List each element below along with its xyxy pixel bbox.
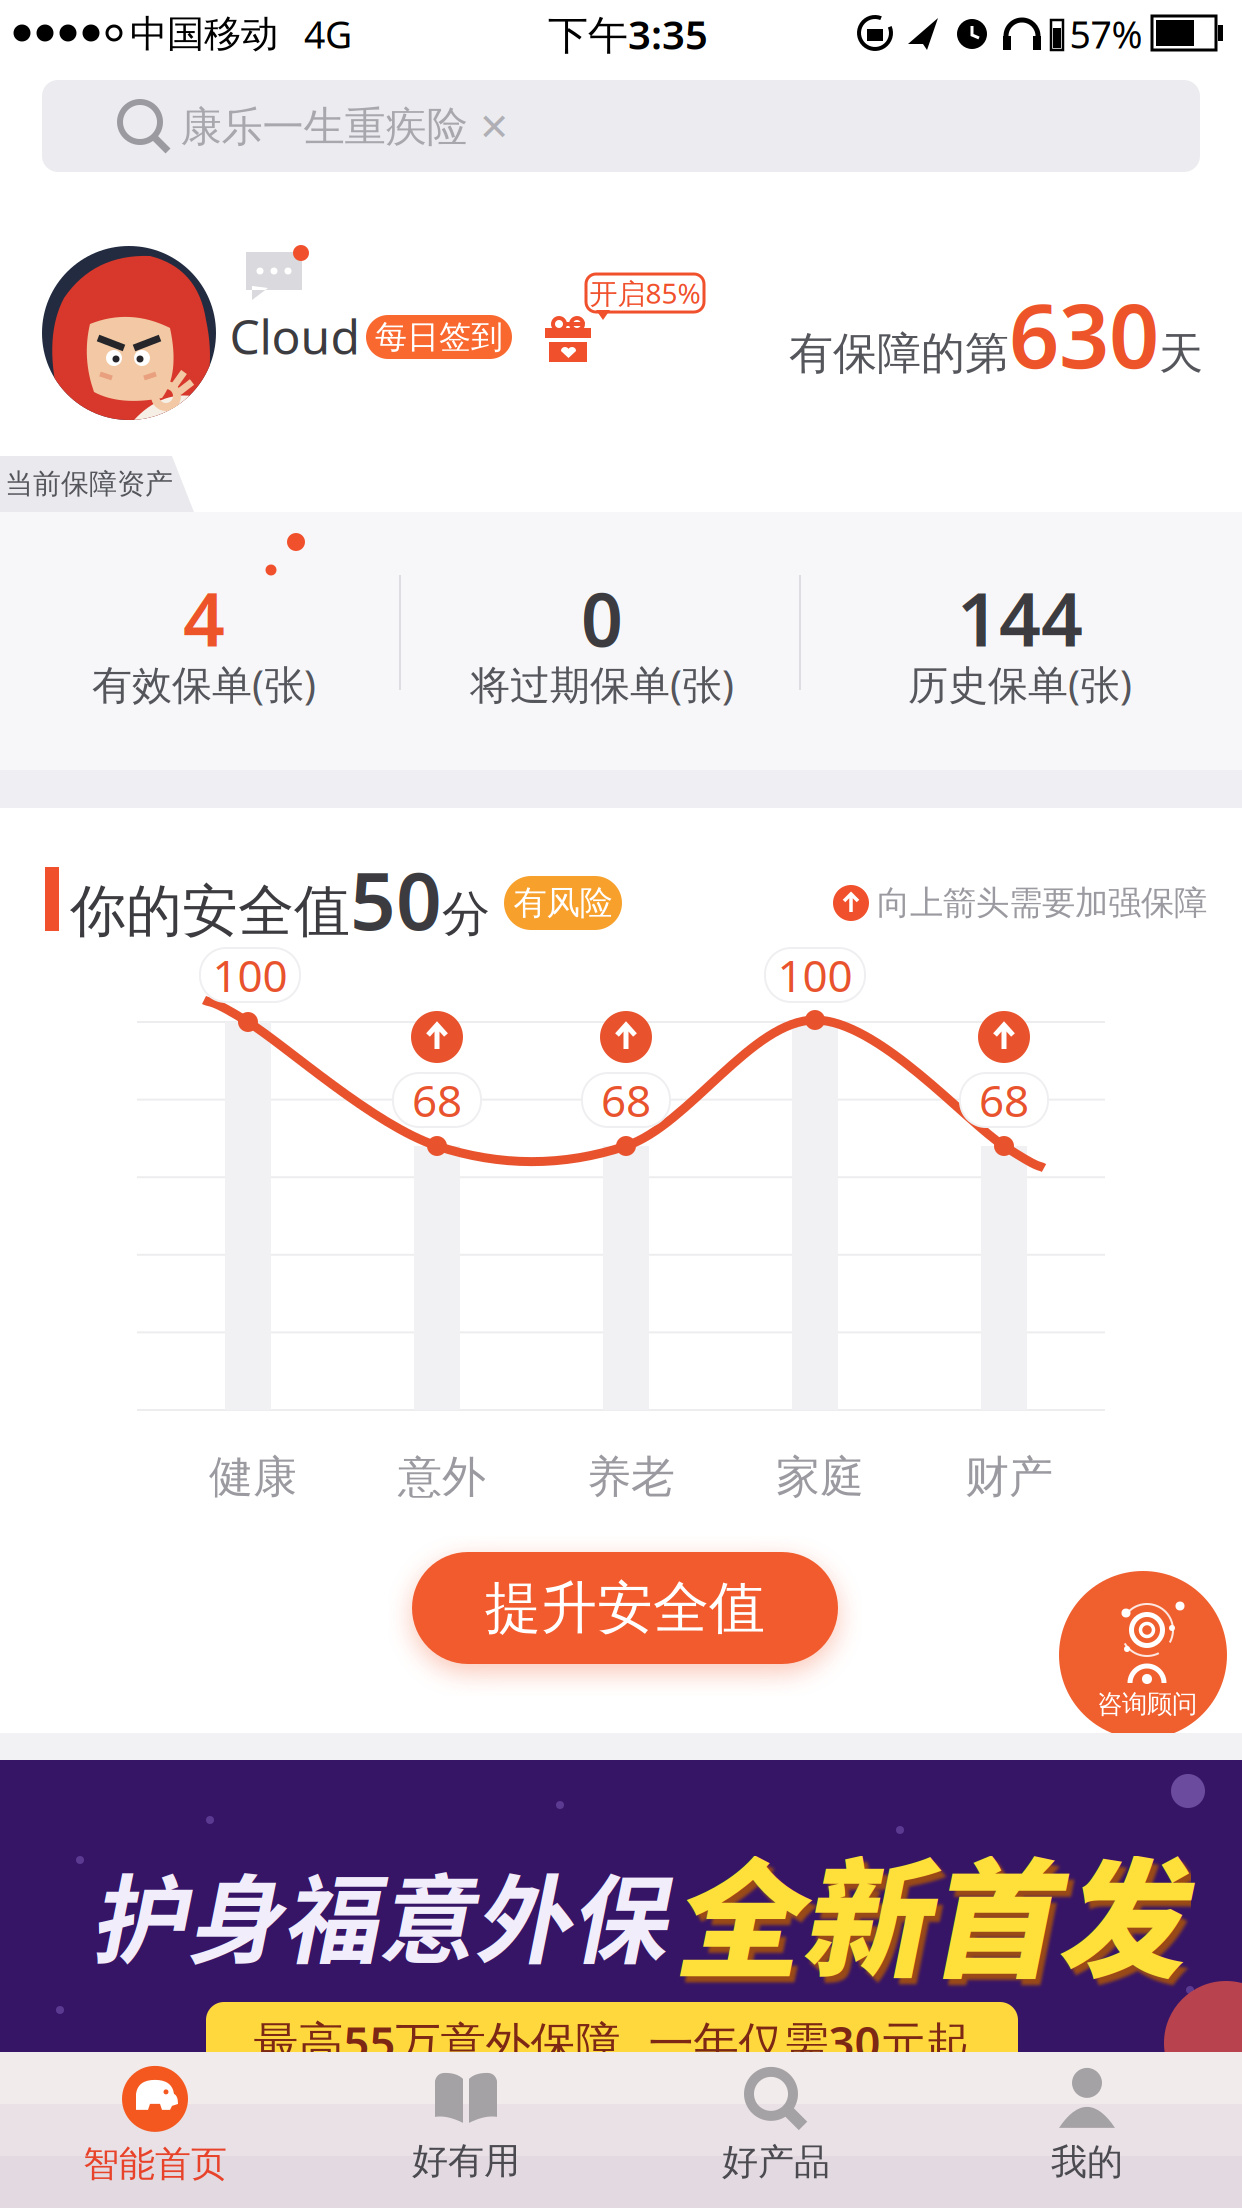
button[interactable]: 好有用 bbox=[316, 2051, 616, 2201]
staticText: 开启85% bbox=[589, 274, 700, 312]
button[interactable]: 智能首页 bbox=[5, 2051, 305, 2201]
staticText: 50 bbox=[350, 846, 442, 952]
staticText: 我的 bbox=[1051, 2140, 1123, 2184]
staticText: 康乐一生重疾险 bbox=[180, 102, 467, 152]
staticText: 护身福意外保 bbox=[90, 1843, 666, 1982]
staticText: 68 bbox=[979, 1071, 1029, 1129]
staticText: 0 bbox=[581, 569, 623, 667]
staticText: 68 bbox=[601, 1071, 651, 1129]
staticText: 全新首发 bbox=[672, 1818, 1184, 2004]
staticText: 4G bbox=[304, 9, 352, 59]
staticText: 分 bbox=[442, 885, 490, 944]
staticText: 最高55万意外保障 一年仅需30元起 bbox=[253, 2012, 970, 2072]
staticText: 当前保障资产 bbox=[5, 467, 173, 501]
button[interactable]: 护身福意外保 bbox=[0, 1733, 1242, 2052]
staticText: 意外 bbox=[398, 1450, 486, 1504]
staticText: 有保障的第 bbox=[789, 326, 1009, 380]
staticText: 咨询顾问 bbox=[1097, 1688, 1197, 1719]
staticText: 提升安全值 bbox=[485, 1574, 765, 1642]
staticText: 100 bbox=[212, 946, 287, 1004]
staticText: 有风险 bbox=[513, 882, 612, 923]
staticText: 健康 bbox=[209, 1450, 297, 1504]
button[interactable]: 我的 bbox=[937, 2051, 1237, 2201]
button[interactable]: 每日签到 bbox=[366, 315, 512, 359]
staticText: 630 bbox=[1009, 276, 1159, 392]
button[interactable]: 提升安全值 bbox=[412, 1552, 838, 1664]
staticText: ✕ bbox=[478, 106, 509, 148]
staticText: 4 bbox=[183, 569, 225, 667]
staticText: 历史保单(张) bbox=[908, 657, 1132, 710]
staticText: 财产 bbox=[965, 1450, 1053, 1504]
button[interactable]: 咨询顾问 bbox=[1059, 1571, 1227, 1739]
staticText: 下午3:35 bbox=[548, 7, 708, 60]
staticText: 68 bbox=[412, 1071, 462, 1129]
staticText: 你的安全值 bbox=[70, 877, 350, 946]
staticText: 好有用 bbox=[412, 2139, 520, 2183]
staticText: 100 bbox=[777, 946, 852, 1004]
button[interactable]: 好产品 bbox=[626, 2051, 926, 2201]
staticText: 中国移动 bbox=[130, 11, 278, 57]
staticText: 天 bbox=[1159, 326, 1203, 380]
staticText: 向上箭头需要加强保障 bbox=[877, 882, 1207, 923]
staticText: 智能首页 bbox=[83, 2142, 227, 2186]
staticText: 有效保单(张) bbox=[92, 657, 316, 710]
button[interactable]: 个人头像 bbox=[42, 246, 216, 420]
staticText: 144 bbox=[957, 569, 1083, 667]
staticText: Cloud bbox=[229, 304, 360, 368]
button[interactable]: 签到礼物 bbox=[545, 318, 591, 362]
staticText: 养老 bbox=[587, 1450, 675, 1504]
button[interactable]: 消息 bbox=[244, 245, 310, 303]
staticText: 家庭 bbox=[776, 1450, 864, 1504]
staticText: 好产品 bbox=[722, 2140, 830, 2184]
staticText: 每日签到 bbox=[375, 317, 503, 357]
staticText: 将过期保单(张) bbox=[470, 657, 734, 710]
button[interactable]: 搜索 bbox=[42, 80, 1200, 172]
staticText: 57% bbox=[1069, 9, 1142, 59]
